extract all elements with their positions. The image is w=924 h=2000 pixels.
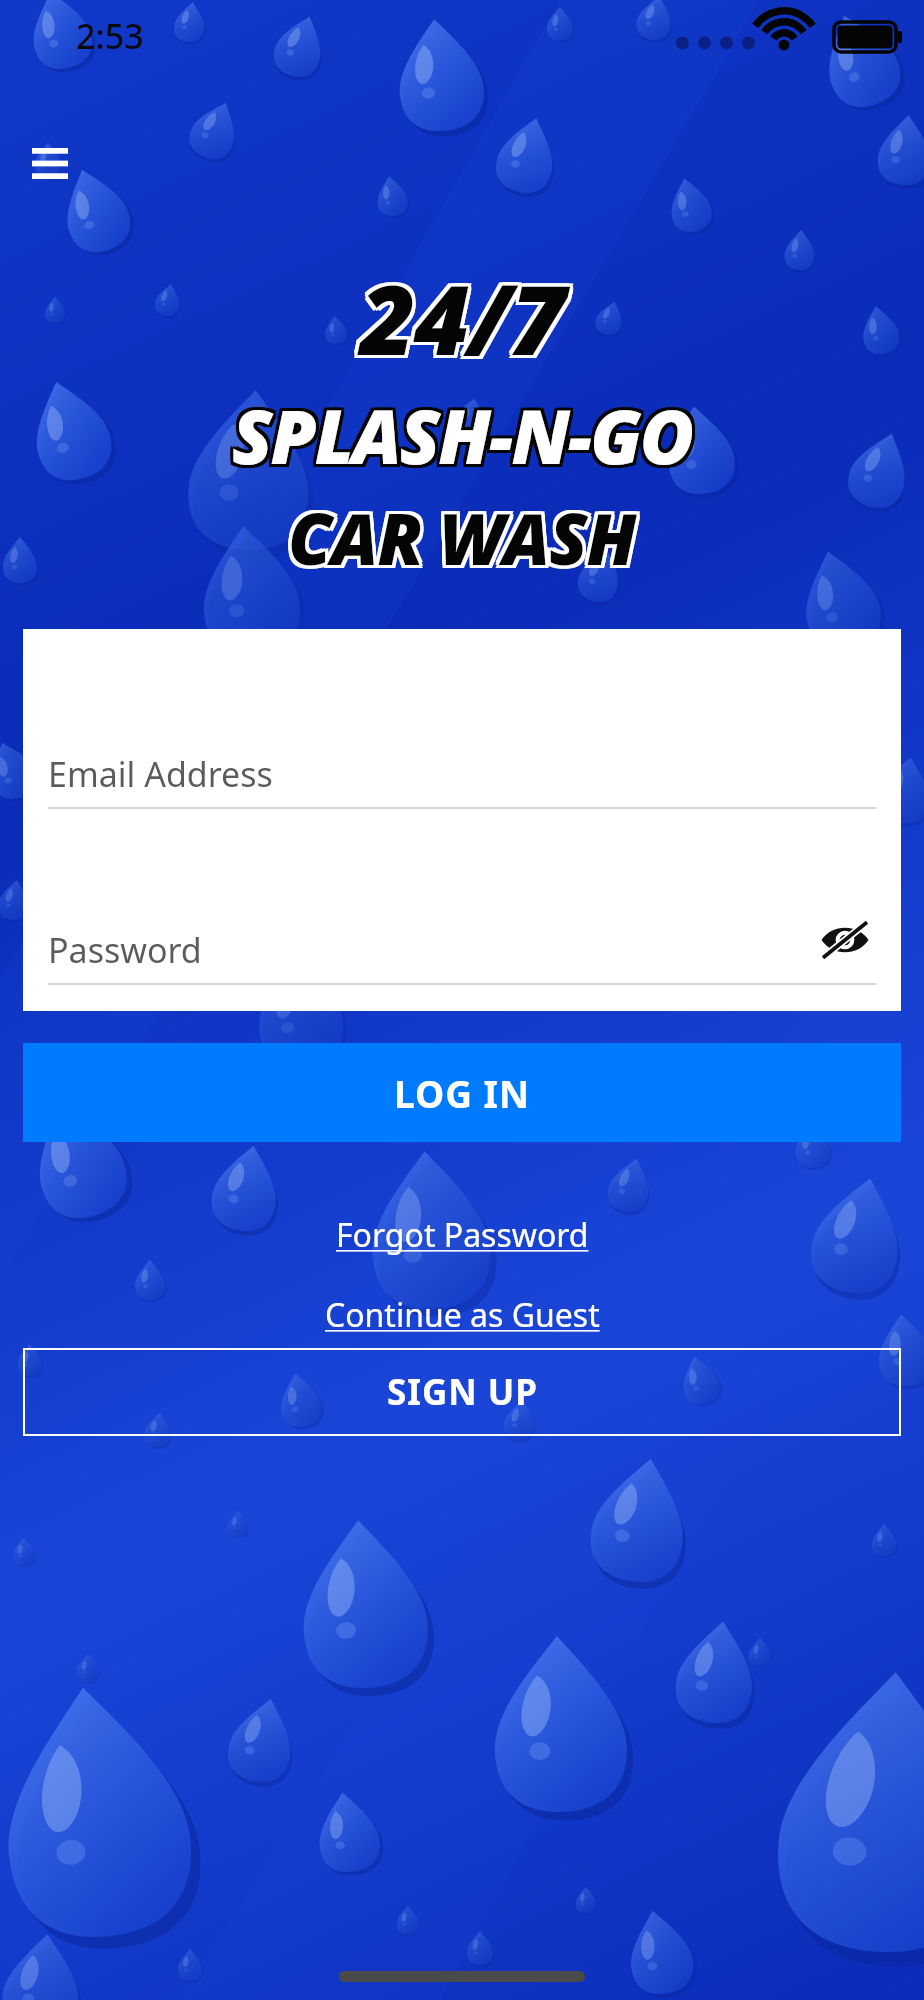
- button[interactable]: Email Address: [48, 733, 876, 809]
- staticText: 24/7: [357, 255, 561, 386]
- button[interactable]: Continue as Guest: [311, 1285, 614, 1345]
- button[interactable]: Show password: [814, 909, 876, 971]
- staticText: SPLASH-N-GO: [235, 385, 696, 486]
- staticText: 24/7: [360, 252, 564, 383]
- staticText: 24/7: [363, 255, 567, 386]
- staticText: Email Address: [48, 751, 273, 797]
- staticText: SPLASH-N-GO: [229, 384, 690, 485]
- staticText: SPLASH-N-GO: [235, 382, 696, 483]
- staticText: CAR WASH: [285, 493, 633, 588]
- staticText: CAR WASH: [291, 490, 639, 585]
- staticText: 24/7: [357, 249, 561, 380]
- staticText: SPLASH-N-GO: [235, 386, 696, 487]
- staticText: SPLASH-N-GO: [235, 388, 696, 489]
- button[interactable]: SIGN UP: [23, 1348, 901, 1436]
- staticText: CAR WASH: [288, 493, 636, 588]
- staticText: SPLASH-N-GO: [232, 388, 693, 489]
- staticText: CAR WASH: [285, 487, 633, 582]
- button[interactable]: Open navigation menu: [18, 132, 82, 194]
- staticText: 24/7: [357, 252, 561, 383]
- staticText: SIGN UP: [387, 1368, 538, 1416]
- staticText: CAR WASH: [291, 487, 639, 582]
- button[interactable]: Forgot Password: [322, 1205, 603, 1265]
- staticText: 24/7: [357, 250, 561, 381]
- staticText: SPLASH-N-GO: [229, 388, 690, 489]
- staticText: SPLASH-N-GO: [232, 385, 693, 486]
- staticText: CAR WASH: [288, 487, 636, 582]
- staticText: Forgot Password: [336, 1213, 589, 1257]
- button[interactable]: LOG IN: [23, 1043, 901, 1142]
- staticText: 24/7: [360, 249, 564, 380]
- staticText: CAR WASH: [291, 493, 639, 588]
- staticText: 24/7: [363, 252, 567, 383]
- staticText: CAR WASH: [285, 490, 633, 585]
- staticText: CAR WASH: [288, 490, 636, 585]
- staticText: SPLASH-N-GO: [229, 385, 690, 486]
- staticText: 24/7: [363, 249, 567, 380]
- staticText: Password: [48, 927, 202, 973]
- staticText: CAR WASH: [285, 489, 633, 584]
- staticText: SPLASH-N-GO: [229, 382, 690, 483]
- staticText: SPLASH-N-GO: [232, 382, 693, 483]
- staticText: CAR WASH: [291, 491, 639, 586]
- staticText: 2:53: [76, 13, 144, 59]
- staticText: Continue as Guest: [325, 1293, 600, 1337]
- staticText: 24/7: [360, 255, 564, 386]
- staticText: LOG IN: [394, 1068, 531, 1118]
- staticText: 24/7: [363, 254, 567, 385]
- button[interactable]: Password: [48, 909, 876, 985]
